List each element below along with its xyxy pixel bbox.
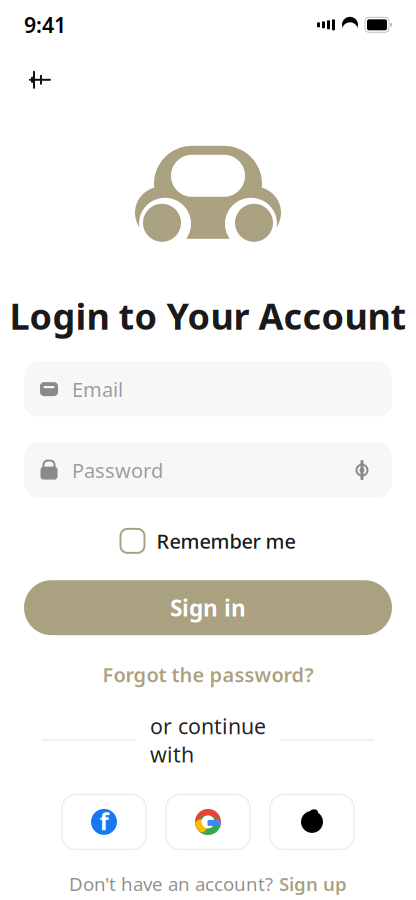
button[interactable]: Remember me [114, 524, 301, 558]
staticText: Remember me [156, 528, 295, 554]
staticText: Don't have an account? [69, 871, 273, 896]
staticText: Forgot the password? [102, 661, 313, 688]
staticText: 9:41 [24, 11, 66, 39]
button[interactable]: Sign up [279, 871, 347, 896]
staticText: Password [72, 457, 163, 483]
staticText: f [99, 805, 108, 837]
button[interactable]: Sign in with Apple [270, 794, 354, 849]
staticText: Email [72, 376, 123, 402]
staticText: Sign in [170, 593, 246, 623]
button[interactable]: Sign in with Google [166, 794, 250, 849]
staticText: Login to Your Account [9, 292, 406, 340]
button[interactable]: Forgot the password? [90, 655, 325, 694]
button[interactable]: Sign in [24, 580, 392, 635]
button[interactable]: Show password [348, 456, 376, 484]
staticText: or continue with [150, 712, 266, 768]
staticText: Sign up [279, 871, 347, 896]
button[interactable]: Sign in with Facebook [62, 794, 146, 849]
button[interactable]: Back [22, 62, 58, 98]
